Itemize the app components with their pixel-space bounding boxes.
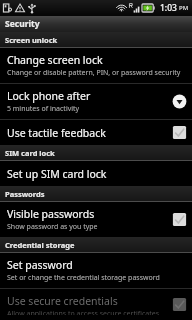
staticText: Set up SIM card lock bbox=[7, 167, 107, 181]
button[interactable]: Change screen lock bbox=[0, 48, 192, 83]
staticText: 1:03 bbox=[160, 2, 177, 14]
staticText: Visible passwords bbox=[7, 207, 95, 221]
staticText: Set password bbox=[7, 258, 73, 272]
staticText: 5 minutes of inactivity bbox=[7, 104, 80, 114]
staticText: Show password as you type bbox=[7, 222, 98, 232]
button[interactable]: Lock phone after bbox=[0, 84, 192, 119]
other: Battery charging bbox=[142, 4, 155, 12]
staticText: Allow applications to access secure cert… bbox=[7, 309, 160, 315]
other: Warning notification bbox=[15, 3, 25, 13]
other: Wi-Fi signal bbox=[116, 3, 127, 13]
button[interactable]: Use tactile feedback bbox=[0, 120, 192, 145]
button[interactable]: Set up SIM card lock bbox=[0, 161, 192, 186]
staticText: Change or disable pattern, PIN, or passw… bbox=[7, 68, 181, 78]
staticText: Credential storage bbox=[5, 240, 75, 250]
other: USB connected bbox=[28, 3, 36, 13]
staticText: Screen unlock bbox=[5, 35, 58, 45]
staticText: SIM card lock bbox=[5, 148, 55, 158]
staticText: Change screen lock bbox=[7, 53, 103, 67]
staticText: Security bbox=[5, 18, 40, 30]
other: Mobile signal bbox=[129, 3, 140, 13]
other: Use secure credentials toggle bbox=[172, 297, 187, 312]
staticText: Use tactile feedback bbox=[7, 126, 106, 140]
other: Use tactile feedback toggle bbox=[172, 125, 187, 140]
button[interactable]: Use secure credentials bbox=[0, 289, 192, 320]
staticText: Lock phone after bbox=[7, 89, 91, 103]
button[interactable]: Set password bbox=[0, 253, 192, 288]
other: SIM card notification bbox=[3, 3, 12, 13]
other: Expand lock timeout options bbox=[172, 94, 187, 109]
staticText: Set or change the credential storage pas… bbox=[7, 273, 160, 283]
staticText: PM bbox=[179, 4, 189, 12]
button[interactable]: Visible passwords bbox=[0, 202, 192, 237]
other: Visible passwords toggle bbox=[172, 212, 187, 227]
staticText: Use secure credentials bbox=[7, 294, 118, 308]
staticText: Passwords bbox=[5, 189, 45, 199]
